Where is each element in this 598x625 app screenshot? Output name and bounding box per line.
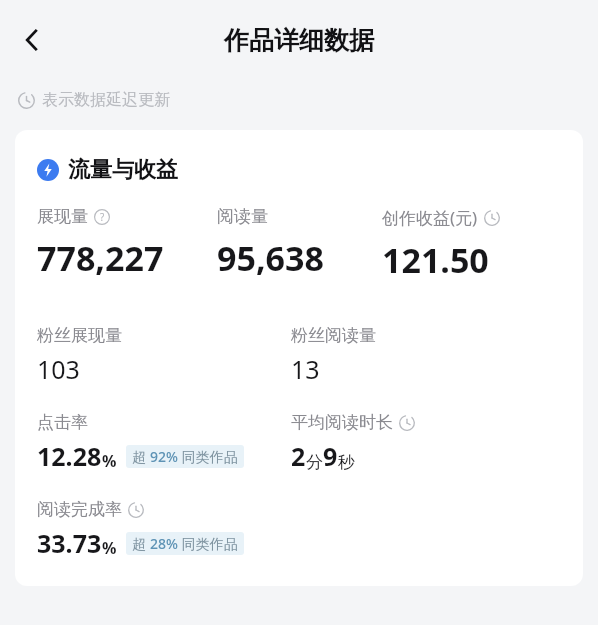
staticText: 12.28 (37, 439, 102, 473)
staticText: 平均阅读时长 (291, 412, 393, 433)
staticText: 121.50 (382, 237, 489, 283)
staticText: 95,638 (217, 235, 324, 281)
staticText: 13 (291, 352, 320, 386)
button[interactable]: 超 (126, 532, 244, 555)
staticText: 同类作品 (178, 447, 238, 466)
staticText: 点击率 (37, 412, 88, 433)
staticText: ? (100, 210, 105, 224)
staticText: 28% (150, 534, 178, 553)
button[interactable]: Back (4, 12, 60, 68)
staticText: 同类作品 (178, 534, 238, 553)
staticText: % (102, 450, 117, 472)
staticText: 作品详细数据 (224, 25, 374, 56)
staticText: 103 (37, 352, 80, 386)
staticText: 秒 (338, 452, 355, 473)
staticText: 分 (306, 452, 323, 473)
staticText: 创作收益(元) (382, 206, 478, 229)
staticText: 阅读量 (217, 206, 268, 227)
button[interactable]: 超 (126, 445, 244, 468)
staticText: 9 (323, 439, 338, 473)
staticText: 33.73 (37, 526, 102, 560)
staticText: 流量与收益 (68, 156, 178, 184)
staticText: 超 (132, 447, 150, 466)
staticText: 表示数据延迟更新 (42, 90, 170, 110)
staticText: 粉丝阅读量 (291, 325, 376, 346)
staticText: 粉丝展现量 (37, 325, 122, 346)
staticText: 超 (132, 534, 150, 553)
staticText: 2 (291, 439, 306, 473)
staticText: 92% (150, 447, 178, 466)
staticText: 阅读完成率 (37, 499, 122, 520)
staticText: 778,227 (37, 235, 164, 281)
staticText: % (102, 537, 117, 559)
staticText: 展现量 (37, 206, 88, 227)
